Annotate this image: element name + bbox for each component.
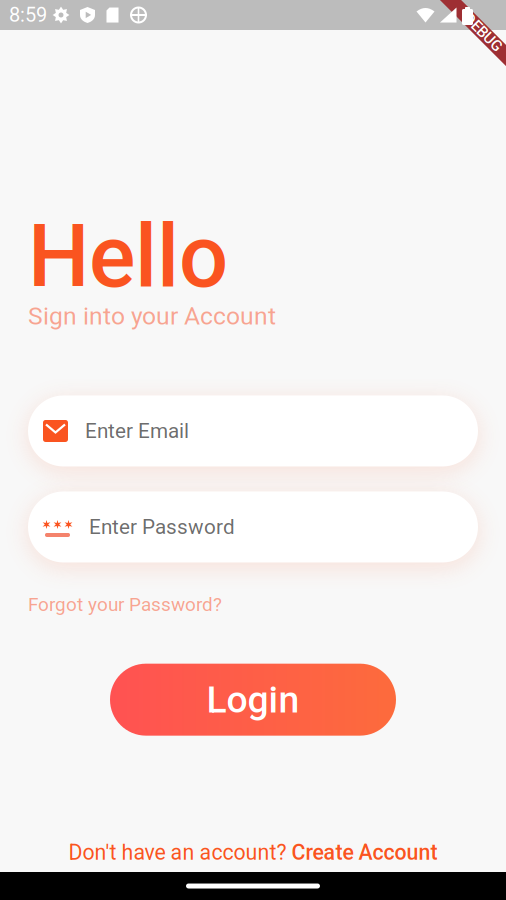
button[interactable]: Login — [110, 664, 396, 736]
staticText: Enter Email — [85, 419, 189, 443]
staticText: 8:59 — [9, 3, 47, 27]
staticText: Hello — [28, 206, 228, 308]
button[interactable]: Create Account — [291, 840, 437, 865]
staticText: Login — [206, 678, 299, 721]
staticText: Forgot your Password? — [28, 593, 222, 616]
button[interactable]: Forgot your Password? — [0, 593, 222, 616]
staticText: Don't have an account? — [68, 840, 291, 865]
staticText: DEBUG — [459, 24, 506, 41]
button[interactable]: Enter Password — [28, 491, 478, 562]
staticText: Enter Password — [89, 515, 235, 539]
staticText: Create Account — [291, 840, 437, 865]
staticText: Sign into your Account — [28, 302, 276, 330]
button[interactable]: Enter Email — [28, 395, 478, 466]
